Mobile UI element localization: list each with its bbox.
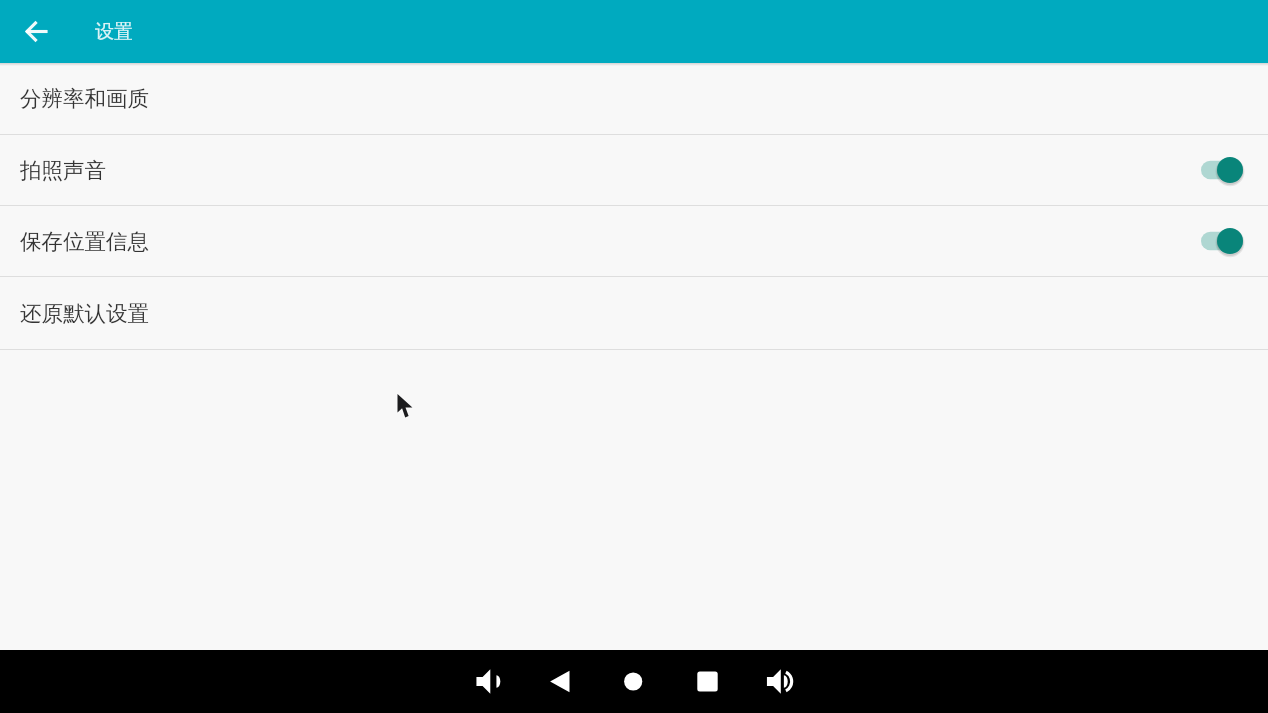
button[interactable]: 拍照声音	[0, 135, 1268, 205]
staticText: 设置	[95, 20, 133, 44]
staticText: 分辨率和画质	[20, 85, 149, 112]
staticText: 保存位置信息	[20, 228, 149, 255]
button[interactable]	[603, 650, 666, 713]
button[interactable]	[0, 0, 63, 63]
button[interactable]: 还原默认设置	[0, 277, 1268, 349]
staticText: 拍照声音	[20, 157, 106, 184]
button[interactable]: 分辨率和画质	[0, 63, 1268, 134]
button[interactable]	[530, 650, 593, 713]
button[interactable]	[676, 650, 739, 713]
button[interactable]	[1198, 146, 1246, 194]
button[interactable]	[1198, 217, 1246, 265]
button[interactable]	[749, 650, 812, 713]
staticText: 还原默认设置	[20, 300, 149, 327]
button[interactable]	[457, 650, 520, 713]
button[interactable]: 保存位置信息	[0, 206, 1268, 276]
